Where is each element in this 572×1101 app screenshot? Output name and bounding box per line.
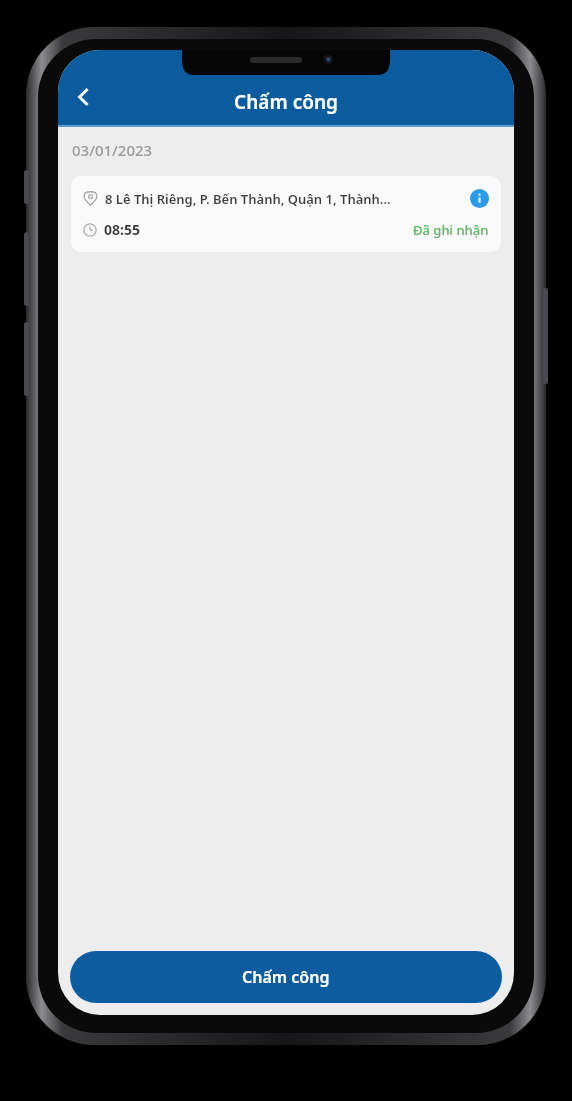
- staticText: 8 Lê Thị Riêng, P. Bến Thành, Quận 1, Th…: [105, 190, 464, 208]
- staticText: 03/01/2023: [72, 140, 153, 160]
- button[interactable]: Chấm công: [70, 951, 502, 1003]
- staticText: Chấm công: [234, 89, 338, 115]
- staticText: Đã ghi nhận: [413, 221, 489, 239]
- button[interactable]: Information: [470, 189, 489, 208]
- button[interactable]: Back: [62, 75, 106, 119]
- button[interactable]: 8 Lê Thị Riêng, P. Bến Thành, Quận 1, Th…: [71, 176, 501, 252]
- staticText: Chấm công: [242, 966, 330, 988]
- staticText: 08:55: [104, 220, 140, 239]
